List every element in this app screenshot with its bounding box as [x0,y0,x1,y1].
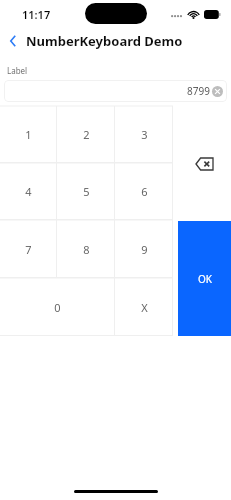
button[interactable]: X [115,278,173,336]
staticText: 3 [141,127,148,142]
button[interactable]: 8799 [4,80,227,102]
button[interactable]: Back [0,28,26,54]
button[interactable]: 2 [57,106,115,163]
button[interactable]: 0 [0,278,115,336]
button[interactable]: 4 [0,163,57,220]
staticText: Label [7,65,28,76]
staticText: NumberKeyboard Demo [26,32,183,50]
button[interactable]: Backspace [178,106,231,221]
staticText: 1 [25,127,32,142]
staticText: 11:17 [22,7,51,22]
button[interactable]: OK [178,221,231,336]
staticText: 0 [54,300,61,315]
staticText: 6 [141,184,148,199]
staticText: 5 [83,184,90,199]
staticText: 4 [25,184,32,199]
staticText: 9 [141,242,148,257]
button[interactable]: 1 [0,106,57,163]
button[interactable]: 3 [115,106,173,163]
staticText: 7 [25,242,32,257]
button[interactable]: 6 [115,163,173,220]
button[interactable]: Clear text [212,86,223,97]
staticText: 2 [83,127,90,142]
staticText: X [141,300,148,315]
button[interactable]: 7 [0,220,57,278]
staticText: 8 [83,242,90,257]
button[interactable]: 5 [57,163,115,220]
button[interactable]: 8 [57,220,115,278]
staticText: 8799 [187,84,210,98]
staticText: OK [198,272,212,286]
button[interactable]: 9 [115,220,173,278]
